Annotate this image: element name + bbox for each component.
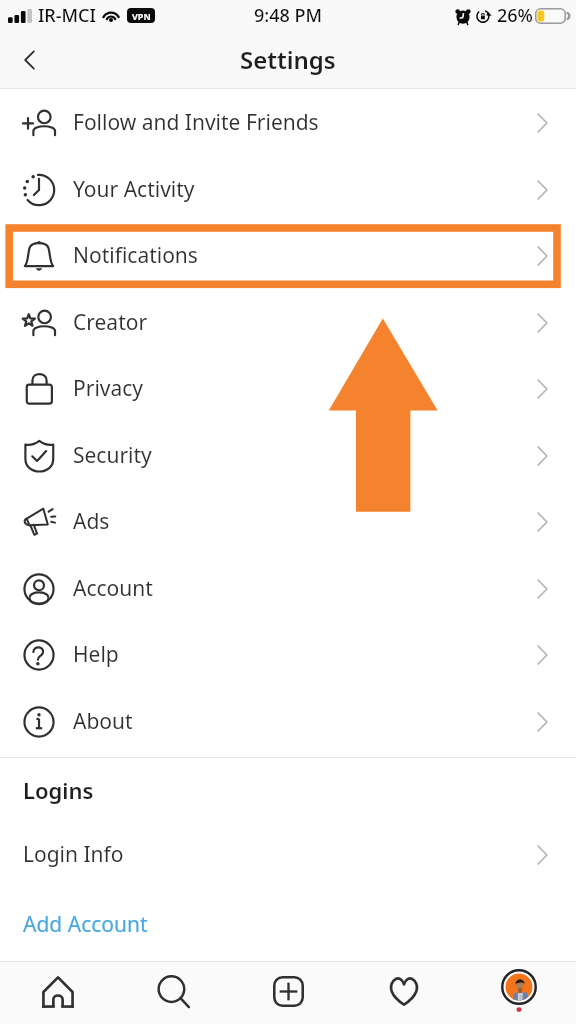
- staticText: 26%: [497, 3, 533, 28]
- button[interactable]: Home: [0, 962, 116, 1024]
- button[interactable]: Activity: [346, 962, 461, 1024]
- button[interactable]: About: [0, 688, 576, 755]
- staticText: Privacy: [73, 374, 144, 403]
- staticText: Account: [73, 574, 153, 603]
- button[interactable]: Ads: [0, 488, 576, 555]
- staticText: Ads: [73, 507, 110, 536]
- staticText: Logins: [23, 775, 94, 805]
- staticText: Security: [73, 441, 152, 470]
- button[interactable]: Security: [0, 422, 576, 489]
- staticText: Login Info: [23, 840, 124, 869]
- button[interactable]: Notifications: [0, 222, 576, 289]
- button[interactable]: Help: [0, 621, 576, 688]
- staticText: Help: [73, 640, 119, 669]
- button[interactable]: Follow and Invite Friends: [0, 89, 576, 156]
- staticText: About: [73, 707, 133, 736]
- button[interactable]: Back: [0, 30, 60, 89]
- staticText: Follow and Invite Friends: [73, 108, 319, 137]
- button[interactable]: Login Info: [0, 821, 576, 888]
- staticText: IR-MCI: [38, 3, 96, 28]
- staticText: Settings: [240, 43, 336, 76]
- button[interactable]: Your Activity: [0, 156, 576, 223]
- staticText: Your Activity: [73, 175, 195, 204]
- staticText: Creator: [73, 308, 148, 337]
- button[interactable]: Profile: [461, 962, 576, 1024]
- button[interactable]: Creator: [0, 289, 576, 356]
- button[interactable]: Account: [0, 555, 576, 622]
- button[interactable]: Privacy: [0, 355, 576, 422]
- staticText: 9:48 PM: [254, 3, 322, 28]
- button[interactable]: Add Account: [0, 891, 576, 958]
- staticText: Add Account: [23, 910, 148, 939]
- staticText: Notifications: [73, 241, 198, 270]
- staticText: VPN: [132, 10, 151, 22]
- button[interactable]: New post: [231, 962, 346, 1024]
- button[interactable]: Search: [116, 962, 231, 1024]
